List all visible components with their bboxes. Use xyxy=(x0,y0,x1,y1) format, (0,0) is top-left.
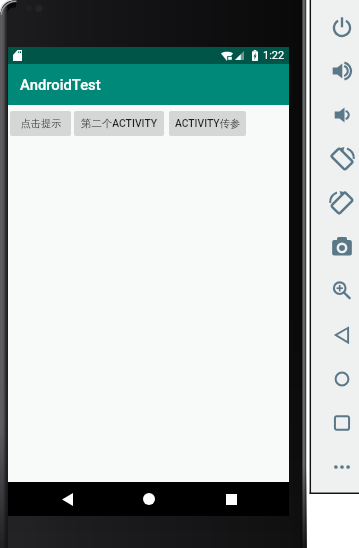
staticText: 1:22 xyxy=(263,49,285,62)
staticText: AndroidTest xyxy=(20,76,101,93)
button[interactable]: 第二个ACTIVITY xyxy=(74,111,164,136)
button[interactable]: Back xyxy=(55,487,79,511)
staticText: 第二个ACTIVITY xyxy=(81,117,158,130)
button[interactable]: Power xyxy=(326,11,358,43)
button[interactable]: Volume down xyxy=(326,99,358,131)
button[interactable]: Home xyxy=(137,487,161,511)
button[interactable]: Rotate right xyxy=(326,187,358,219)
staticText: ACTIVITY传参 xyxy=(175,117,241,130)
button[interactable]: More xyxy=(326,451,358,483)
button[interactable]: Back xyxy=(326,319,358,351)
button[interactable]: Recent apps xyxy=(219,487,243,511)
button[interactable]: ACTIVITY传参 xyxy=(169,111,246,136)
button[interactable]: Rotate left xyxy=(326,143,358,175)
button[interactable]: Take screenshot xyxy=(326,231,358,263)
button[interactable]: Overview xyxy=(326,407,358,439)
staticText: 点击提示 xyxy=(21,117,61,130)
button[interactable]: 点击提示 xyxy=(10,111,71,136)
button[interactable]: Volume up xyxy=(326,55,358,87)
button[interactable]: Home xyxy=(326,363,358,395)
button[interactable]: AndroidTest xyxy=(8,64,289,105)
button[interactable]: Zoom xyxy=(326,274,358,306)
